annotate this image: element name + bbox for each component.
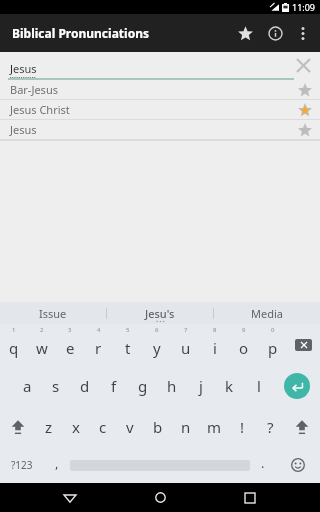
staticText: c bbox=[99, 417, 107, 437]
staticText: 4 bbox=[97, 326, 101, 334]
staticText: 8 bbox=[213, 326, 217, 334]
button[interactable]: Jesus Christ bbox=[0, 100, 320, 119]
button[interactable]: Space bbox=[70, 447, 250, 483]
button[interactable]: 7 bbox=[171, 324, 200, 366]
button[interactable]: c bbox=[89, 406, 116, 447]
staticText: q bbox=[9, 338, 19, 358]
staticText: z bbox=[45, 417, 53, 437]
staticText: ! bbox=[240, 417, 245, 437]
staticText: l bbox=[257, 376, 261, 396]
staticText: s bbox=[52, 376, 60, 396]
staticText: i bbox=[213, 338, 217, 358]
staticText: r bbox=[95, 338, 102, 358]
button[interactable]: x bbox=[62, 406, 89, 447]
button[interactable]: Favorites bbox=[230, 18, 260, 48]
button[interactable]: j bbox=[186, 366, 215, 406]
staticText: a bbox=[23, 376, 32, 396]
staticText: , bbox=[55, 454, 59, 472]
staticText: 1 bbox=[12, 326, 16, 334]
button[interactable]: More options bbox=[290, 20, 316, 46]
staticText: Issue bbox=[39, 306, 67, 321]
staticText: Media bbox=[251, 306, 283, 321]
staticText: Jesus bbox=[10, 61, 37, 76]
button[interactable]: Toggle favorite bbox=[296, 81, 314, 99]
button[interactable]: 3 bbox=[56, 324, 84, 366]
staticText: v bbox=[126, 417, 134, 437]
staticText: 11:09 bbox=[292, 1, 316, 13]
staticText: y bbox=[153, 338, 161, 358]
button[interactable]: Jesu's bbox=[107, 302, 213, 324]
button[interactable]: Back bbox=[50, 483, 90, 512]
button[interactable]: h bbox=[157, 366, 186, 406]
staticText: u bbox=[181, 338, 191, 358]
button[interactable]: Period bbox=[250, 447, 276, 483]
button[interactable]: m bbox=[200, 406, 228, 447]
button[interactable]: v bbox=[116, 406, 144, 447]
button[interactable]: n bbox=[172, 406, 200, 447]
staticText: w bbox=[36, 338, 48, 358]
button[interactable]: Bar-Jesus bbox=[0, 80, 320, 99]
button[interactable]: Emoji bbox=[276, 447, 320, 483]
button[interactable]: Comma bbox=[44, 447, 70, 483]
button[interactable]: 1 bbox=[0, 324, 28, 366]
staticText: 2 bbox=[40, 326, 44, 334]
staticText: b bbox=[153, 417, 163, 437]
button[interactable]: Shift bbox=[284, 406, 320, 447]
button[interactable]: z bbox=[35, 406, 62, 447]
button[interactable]: Clear search bbox=[290, 52, 316, 78]
staticText: 6 bbox=[155, 326, 159, 334]
button[interactable]: l bbox=[244, 366, 273, 406]
button[interactable]: Media bbox=[214, 302, 320, 324]
staticText: 9 bbox=[242, 326, 246, 334]
staticText: f bbox=[111, 376, 117, 396]
staticText: m bbox=[207, 417, 222, 437]
button[interactable]: k bbox=[215, 366, 244, 406]
staticText: Biblical Pronunciations bbox=[12, 25, 149, 41]
staticText: j bbox=[199, 376, 203, 396]
button[interactable]: 6 bbox=[142, 324, 171, 366]
staticText: n bbox=[181, 417, 191, 437]
button[interactable]: ?123 bbox=[0, 447, 44, 483]
button[interactable]: 0 bbox=[258, 324, 287, 366]
button[interactable]: Toggle favorite bbox=[296, 121, 314, 139]
staticText: Jesus Christ bbox=[10, 102, 70, 117]
button[interactable]: Enter bbox=[273, 366, 320, 406]
button[interactable]: Toggle favorite bbox=[296, 101, 314, 119]
staticText: p bbox=[268, 338, 278, 358]
staticText: 3 bbox=[68, 326, 72, 334]
button[interactable]: 2 bbox=[28, 324, 56, 366]
button[interactable]: s bbox=[41, 366, 70, 406]
button[interactable]: 5 bbox=[113, 324, 142, 366]
button[interactable]: Shift bbox=[0, 406, 35, 447]
staticText: ? bbox=[267, 417, 274, 437]
button[interactable]: ? bbox=[256, 406, 284, 447]
staticText: ?123 bbox=[11, 458, 33, 472]
staticText: g bbox=[138, 376, 148, 396]
staticText: h bbox=[167, 376, 177, 396]
button[interactable]: Delete bbox=[287, 324, 320, 366]
button[interactable]: Jesus bbox=[0, 120, 320, 139]
button[interactable]: Info bbox=[260, 18, 290, 48]
button[interactable]: ! bbox=[228, 406, 256, 447]
staticText: d bbox=[80, 376, 90, 396]
button[interactable]: 8 bbox=[200, 324, 229, 366]
staticText: t bbox=[125, 338, 131, 358]
button[interactable]: g bbox=[128, 366, 157, 406]
staticText: 7 bbox=[184, 326, 188, 334]
button[interactable]: 9 bbox=[229, 324, 258, 366]
button[interactable]: f bbox=[99, 366, 128, 406]
button[interactable]: b bbox=[144, 406, 172, 447]
staticText: x bbox=[72, 417, 80, 437]
button[interactable]: Issue bbox=[0, 302, 106, 324]
staticText: 5 bbox=[126, 326, 130, 334]
button[interactable]: Home bbox=[140, 483, 180, 512]
staticText: Jesus bbox=[10, 122, 37, 137]
button[interactable]: d bbox=[70, 366, 99, 406]
staticText: Bar-Jesus bbox=[10, 82, 58, 97]
staticText: . bbox=[261, 454, 265, 472]
staticText: Jesu's bbox=[145, 306, 175, 321]
staticText: e bbox=[66, 338, 75, 358]
button[interactable]: a bbox=[13, 366, 41, 406]
button[interactable]: 4 bbox=[84, 324, 113, 366]
button[interactable]: Recent apps bbox=[230, 483, 270, 512]
